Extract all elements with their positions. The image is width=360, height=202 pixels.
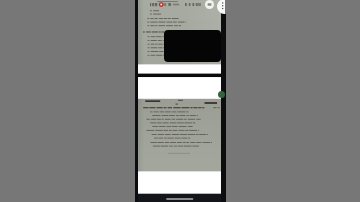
button[interactable]: Profile — [205, 0, 214, 9]
button[interactable]: New item — [218, 91, 225, 98]
button[interactable]: More options — [217, 0, 232, 14]
button[interactable]: Video preview — [138, 0, 221, 202]
button[interactable]: Video preview — [164, 30, 221, 62]
